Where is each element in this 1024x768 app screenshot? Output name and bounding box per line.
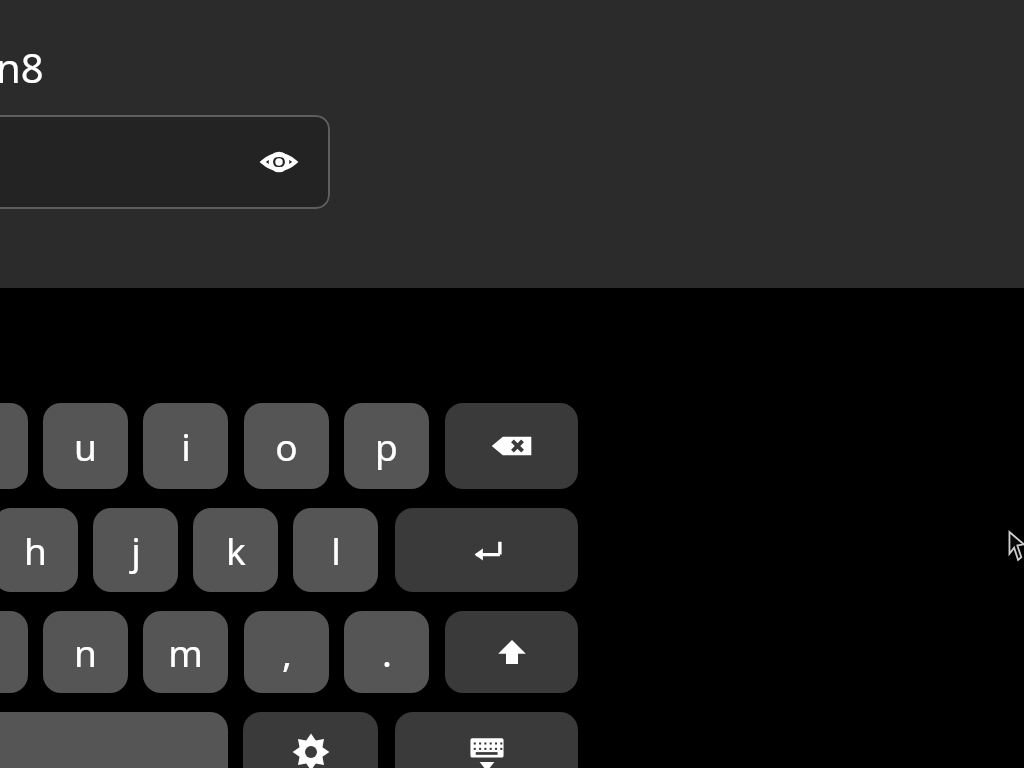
button[interactable]: p bbox=[344, 403, 429, 489]
staticText: . bbox=[382, 627, 392, 677]
staticText: u bbox=[74, 421, 97, 471]
button[interactable]: u bbox=[43, 403, 128, 489]
button[interactable]: j bbox=[93, 508, 178, 592]
staticText: k bbox=[226, 525, 246, 575]
button[interactable]: b bbox=[0, 611, 28, 693]
staticText: n8 bbox=[0, 40, 44, 94]
button[interactable]: Show password bbox=[0, 115, 330, 209]
button[interactable]: Enter bbox=[395, 508, 578, 592]
button[interactable]: l bbox=[293, 508, 378, 592]
staticText: o bbox=[275, 421, 298, 471]
button[interactable]: i bbox=[143, 403, 228, 489]
button[interactable]: m bbox=[143, 611, 228, 693]
button[interactable]: h bbox=[0, 508, 78, 592]
staticText: n bbox=[74, 627, 97, 677]
button[interactable]: o bbox=[244, 403, 329, 489]
staticText: h bbox=[24, 525, 47, 575]
button[interactable]: y bbox=[0, 403, 28, 489]
button[interactable]: . bbox=[344, 611, 429, 693]
staticText: j bbox=[131, 525, 141, 575]
staticText: i bbox=[181, 421, 191, 471]
button[interactable]: Hide keyboard bbox=[395, 712, 578, 768]
staticText: , bbox=[282, 627, 292, 677]
button[interactable]: Show password bbox=[255, 138, 303, 186]
button[interactable]: Settings bbox=[243, 712, 378, 768]
button[interactable]: n bbox=[43, 611, 128, 693]
staticText: l bbox=[331, 525, 341, 575]
button[interactable] bbox=[0, 712, 228, 768]
button[interactable]: k bbox=[193, 508, 278, 592]
button[interactable]: Backspace bbox=[445, 403, 578, 489]
staticText: p bbox=[375, 421, 398, 471]
button[interactable]: Shift bbox=[445, 611, 578, 693]
button[interactable]: , bbox=[244, 611, 329, 693]
staticText: m bbox=[168, 627, 203, 677]
